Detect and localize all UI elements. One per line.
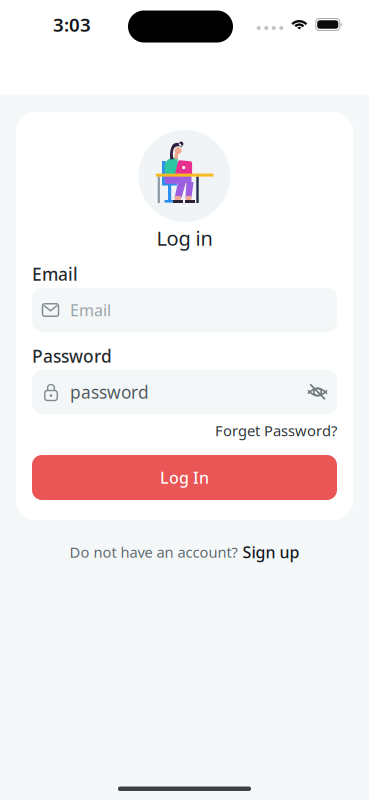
- button[interactable]: Log In: [32, 455, 337, 500]
- staticText: Email: [70, 299, 111, 321]
- staticText: Log in: [156, 225, 212, 251]
- staticText: password: [70, 380, 149, 403]
- staticText: 3:03: [53, 12, 91, 37]
- staticText: Sign up: [242, 541, 299, 563]
- button[interactable]: Sign up: [242, 541, 299, 563]
- staticText: Forget Password?: [215, 421, 337, 440]
- staticText: Email: [32, 262, 78, 285]
- staticText: Password: [32, 344, 112, 367]
- button[interactable]: Forget Password?: [215, 422, 337, 439]
- staticText: Log In: [160, 467, 209, 488]
- button[interactable]: Show password: [307, 381, 328, 402]
- staticText: Do not have an account?: [69, 542, 237, 562]
